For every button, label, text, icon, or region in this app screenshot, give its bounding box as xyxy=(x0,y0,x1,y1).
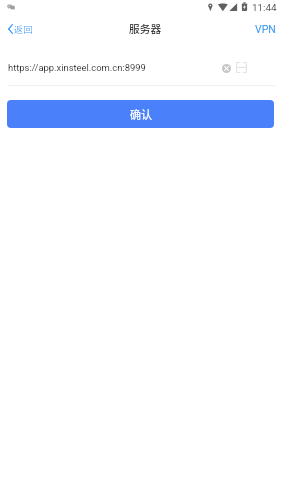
button[interactable]: VPN xyxy=(249,20,281,38)
staticText: https://app.xinsteel.com.cn:8999 xyxy=(8,62,146,73)
button[interactable]: Clear xyxy=(220,62,233,75)
button[interactable]: 返回 xyxy=(2,19,36,38)
staticText: 服务器 xyxy=(129,21,162,36)
staticText: VPN xyxy=(255,23,276,35)
button[interactable]: Scan QR code xyxy=(235,61,248,74)
button[interactable]: https://app.xinsteel.com.cn:8999 xyxy=(7,54,217,85)
button[interactable]: 确认 xyxy=(7,100,274,128)
staticText: 11:44 xyxy=(252,2,277,14)
staticText: 返回 xyxy=(14,22,33,35)
staticText: 确认 xyxy=(130,106,152,122)
